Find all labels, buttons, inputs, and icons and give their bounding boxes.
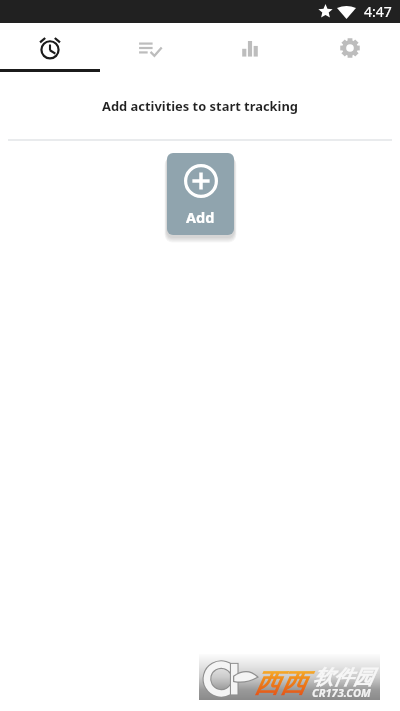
staticText: Add activities to start tracking xyxy=(0,97,400,115)
staticText: CR173.COM xyxy=(312,685,371,700)
staticText: 4:47 xyxy=(364,2,392,21)
staticText: Add xyxy=(186,207,215,227)
button[interactable]: Alarm xyxy=(0,23,100,72)
staticText: 西西 xyxy=(254,667,306,700)
button[interactable]: Add xyxy=(167,153,234,235)
staticText: 软件园 xyxy=(313,665,373,690)
button[interactable]: Activities xyxy=(100,23,200,72)
button[interactable]: Statistics xyxy=(200,23,300,72)
button[interactable]: Settings xyxy=(300,23,400,72)
